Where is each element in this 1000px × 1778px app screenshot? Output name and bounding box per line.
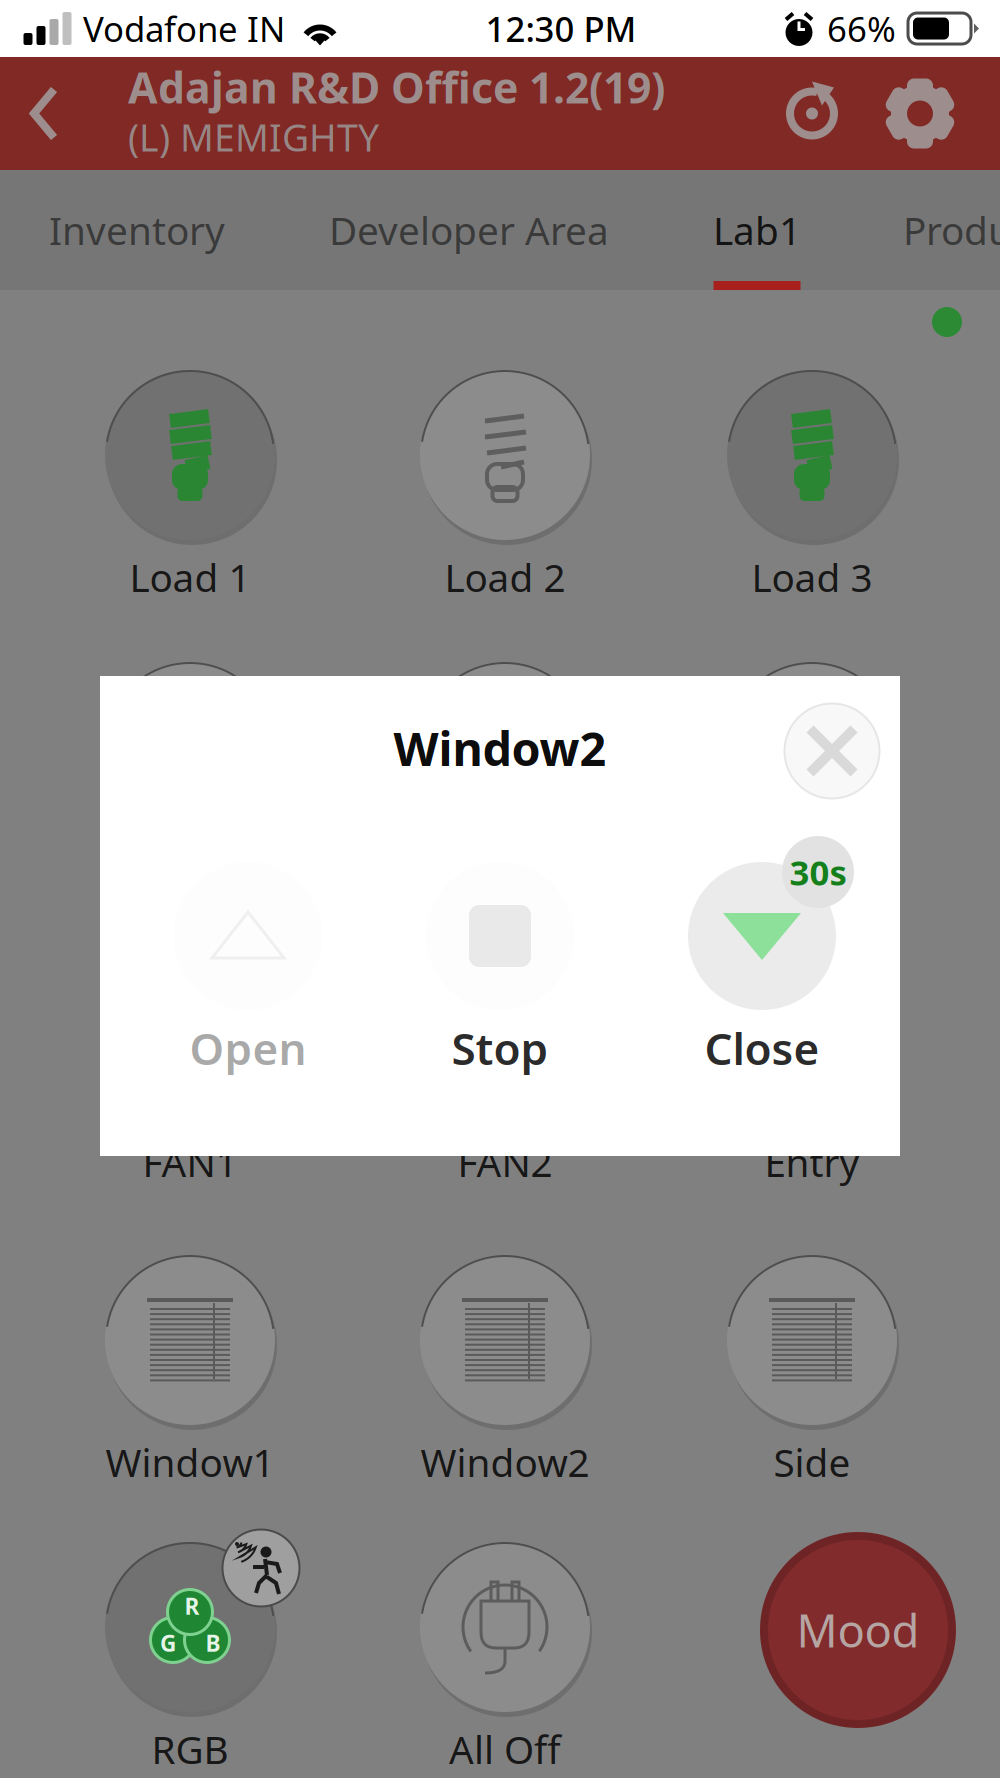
- button[interactable]: Refresh: [762, 57, 862, 170]
- button[interactable]: Developer Area: [304, 170, 634, 290]
- button[interactable]: FAN1: [40, 955, 340, 1199]
- staticText: Adajan R&D Office 1.2(19): [128, 59, 665, 115]
- button[interactable]: Lab1: [683, 170, 831, 290]
- staticText: R: [184, 1591, 199, 1621]
- button[interactable]: Window1: [40, 1255, 340, 1499]
- staticText: 30s: [789, 849, 846, 895]
- button[interactable]: Close: [652, 862, 872, 1086]
- staticText: Developer Area: [329, 204, 609, 256]
- staticText: Stop: [451, 1019, 548, 1077]
- button[interactable]: FAN2: [355, 955, 655, 1199]
- staticText: G: [160, 1628, 176, 1658]
- staticText: FAN2: [457, 1136, 552, 1188]
- staticText: Close: [704, 1019, 819, 1077]
- staticText: RGB: [151, 1723, 228, 1775]
- staticText: Entry: [764, 1136, 859, 1188]
- staticText: Window2: [393, 717, 606, 779]
- button[interactable]: Window2: [355, 1255, 655, 1499]
- button[interactable]: Side: [662, 1255, 962, 1499]
- button[interactable]: [40, 662, 340, 906]
- button[interactable]: Load 1: [40, 370, 340, 614]
- staticText: 12:30 PM: [485, 5, 636, 51]
- button[interactable]: All Off: [355, 1542, 655, 1778]
- staticText: Inventory: [49, 204, 225, 256]
- staticText: Window2: [420, 1436, 589, 1488]
- staticText: (L) MEMIGHTY: [128, 112, 379, 162]
- button[interactable]: Produ: [903, 170, 1000, 290]
- button[interactable]: R: [40, 1542, 340, 1778]
- button[interactable]: Settings: [868, 57, 972, 170]
- staticText: Side: [773, 1436, 850, 1488]
- button[interactable]: Stop: [390, 862, 610, 1086]
- staticText: Vodafone IN: [83, 5, 285, 51]
- staticText: Load 2: [444, 551, 565, 603]
- staticText: Lab1: [713, 204, 801, 256]
- staticText: 66%: [827, 5, 896, 51]
- staticText: Load 3: [751, 551, 872, 603]
- button[interactable]: Load 2: [355, 370, 655, 614]
- staticText: Window1: [105, 1436, 274, 1488]
- staticText: Produ: [903, 204, 1000, 256]
- button[interactable]: Open: [138, 862, 358, 1086]
- button[interactable]: Inventory: [17, 170, 257, 290]
- button[interactable]: Entry: [662, 955, 962, 1199]
- staticText: Mood: [796, 1600, 919, 1660]
- staticText: Open: [189, 1019, 306, 1077]
- staticText: B: [205, 1628, 220, 1658]
- button[interactable]: [662, 662, 962, 906]
- button[interactable]: Load 3: [662, 370, 962, 614]
- staticText: All Off: [449, 1723, 561, 1775]
- button[interactable]: [355, 662, 655, 906]
- button[interactable]: Mood: [708, 1532, 1000, 1776]
- button[interactable]: Close: [784, 703, 880, 799]
- staticText: Load 1: [129, 551, 250, 603]
- button[interactable]: Back: [0, 57, 88, 170]
- staticText: FAN1: [142, 1136, 237, 1188]
